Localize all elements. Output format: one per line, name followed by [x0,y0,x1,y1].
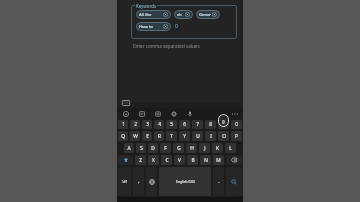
button[interactable]: Backspace [226,155,242,165]
button[interactable]: S [136,143,146,153]
button[interactable]: L [225,143,236,153]
button[interactable]: How to separate [136,22,171,31]
staticText: H [190,145,194,152]
staticText: J [204,145,206,152]
staticText: 7 [196,121,199,128]
button[interactable]: Z [135,155,146,165]
button[interactable]: P [231,131,242,141]
button[interactable]: B [187,155,198,165]
button[interactable]: G [173,143,184,153]
button[interactable]: General k [196,10,220,19]
button[interactable]: Q [118,131,128,141]
button[interactable]: Voice input [185,109,194,118]
staticText: 9 [222,121,225,128]
button[interactable]: F [160,143,171,153]
button[interactable]: 5 [166,120,177,129]
button[interactable]: Y [179,131,190,141]
staticText: T [170,133,173,140]
button[interactable]: O [218,131,229,141]
button[interactable]: U [192,131,203,141]
staticText: 6 [183,121,186,128]
staticText: !#1 [122,179,128,184]
button[interactable]: 2 [130,120,140,129]
button[interactable]: A [124,143,134,153]
staticText: Keywords [136,3,156,9]
button[interactable]: English (US) [159,167,211,196]
button[interactable]: 7 [192,120,203,129]
staticText: D [151,145,155,152]
staticText: K [216,145,219,152]
staticText: P [235,133,238,140]
button[interactable]: I [205,131,216,141]
staticText: A [127,145,131,152]
button[interactable]: Emoji [121,109,130,118]
staticText: 0 [235,121,238,128]
button[interactable]: All the content [136,10,171,19]
staticText: I [210,133,212,140]
button[interactable]: 6 [179,120,190,129]
button[interactable]: 4 [154,120,164,129]
button[interactable]: , [133,167,144,196]
button[interactable]: K [212,143,223,153]
staticText: W [133,133,138,140]
button[interactable]: 3 [142,120,152,129]
staticText: 1 [122,121,125,128]
staticText: 5 [170,121,173,128]
button[interactable]: More options [231,110,239,118]
staticText: F [164,145,167,152]
staticText: N [204,157,208,164]
staticText: , [138,178,140,185]
staticText: shorts [177,12,184,18]
button[interactable]: 8 [205,120,216,129]
button[interactable]: R [154,131,164,141]
staticText: 0 [175,23,178,30]
button[interactable]: N [200,155,211,165]
button[interactable]: Switch keyboard [121,99,131,107]
button[interactable]: Settings [169,109,178,118]
staticText: 2 [134,121,137,128]
button[interactable]: Shift [118,155,133,165]
button[interactable]: V [174,155,185,165]
button[interactable]: 0 [231,120,242,129]
staticText: Q [121,133,125,140]
staticText: C [165,157,169,164]
button[interactable]: Search [226,167,242,196]
staticText: 3 [146,121,149,128]
staticText: L [229,145,232,152]
staticText: General k [199,12,211,18]
button[interactable]: W [130,131,140,141]
button[interactable]: D [148,143,158,153]
button[interactable]: !#1 [118,167,131,196]
staticText: M [216,157,221,164]
button[interactable]: shorts [174,10,193,19]
staticText: English (US) [176,179,195,184]
button[interactable]: Language [146,167,157,196]
staticText: S [140,145,143,152]
staticText: E [146,133,149,140]
button[interactable]: M [213,155,224,165]
button[interactable]: 1 [118,120,128,129]
staticText: U [196,133,200,140]
button[interactable]: J [199,143,210,153]
staticText: All the content [139,12,162,18]
staticText: 9 [222,119,225,125]
staticText: Enter comma separated values [133,43,200,49]
staticText: X [152,157,155,164]
staticText: Y [183,133,186,140]
button[interactable]: E [142,131,152,141]
staticText: . [218,178,220,185]
button[interactable]: T [166,131,177,141]
staticText: V [178,157,181,164]
button[interactable]: Clipboard [153,109,162,118]
button[interactable]: H [186,143,197,153]
staticText: B [191,157,195,164]
staticText: R [158,133,161,140]
button[interactable]: 9 [218,120,229,129]
button[interactable]: . [213,167,224,196]
staticText: Z [139,157,142,164]
staticText: O [222,133,226,140]
button[interactable]: Stickers [137,109,146,118]
button[interactable]: C [161,155,172,165]
staticText: G [177,145,181,152]
button[interactable]: X [148,155,159,165]
